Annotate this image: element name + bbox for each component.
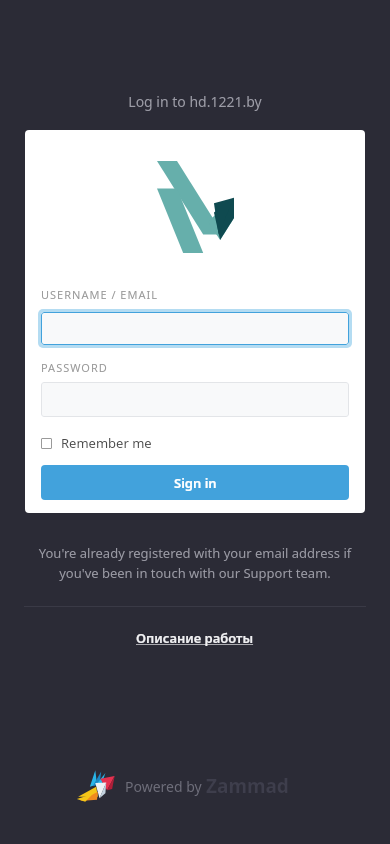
other: Zammad logo <box>76 768 118 804</box>
button[interactable]: Описание работы <box>136 629 254 647</box>
staticText: PASSWORD <box>41 360 108 375</box>
staticText: USERNAME / EMAIL <box>41 287 158 302</box>
staticText: Zammad <box>206 773 289 799</box>
staticText: Описание работы <box>136 629 254 647</box>
staticText: You're already registered with your emai… <box>28 544 362 582</box>
button[interactable] <box>41 312 349 345</box>
staticText: Log in to hd.1221.by <box>128 92 262 111</box>
staticText: Powered by <box>125 777 206 796</box>
staticText: Remember me <box>61 434 152 452</box>
staticText: Sign in <box>174 474 217 492</box>
button[interactable]: Sign in <box>41 465 349 500</box>
button[interactable] <box>41 382 349 417</box>
button[interactable]: Remember me <box>41 434 152 452</box>
